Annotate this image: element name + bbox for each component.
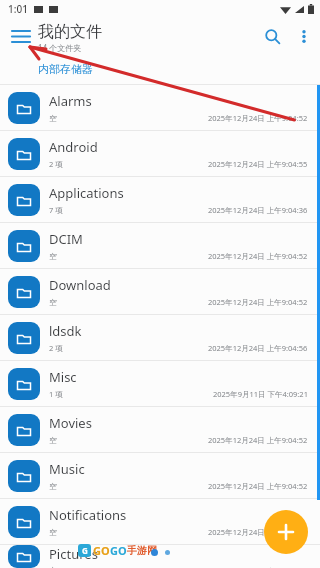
staticText: ldsdk <box>49 322 82 340</box>
staticText: 2025年9月11日 下午4:09:21 <box>213 389 308 399</box>
staticText: Alarms <box>49 92 92 110</box>
staticText: 空 <box>49 298 57 307</box>
button[interactable]: Movies <box>0 407 320 452</box>
staticText: 手游网 <box>127 544 157 557</box>
staticText: GO <box>93 543 110 558</box>
button[interactable]: Alarms <box>0 85 320 130</box>
button[interactable]: Music <box>0 453 320 498</box>
staticText: Music <box>49 460 85 478</box>
staticText: 空 <box>49 252 57 261</box>
staticText: 2025年12月24日 上午9:04:52 <box>208 251 308 261</box>
staticText: 1 项 <box>49 389 63 399</box>
button[interactable]: More options <box>288 20 320 52</box>
button[interactable]: 内部存储器 <box>38 62 93 76</box>
staticText: Download <box>49 276 111 294</box>
button[interactable]: Search <box>256 20 288 52</box>
staticText: 我的文件 <box>38 22 102 42</box>
staticText: 2025年12月24日 上午9:04:56 <box>208 343 308 353</box>
staticText: 空 <box>49 436 57 445</box>
button[interactable]: Misc <box>0 361 320 406</box>
button[interactable]: Download <box>0 269 320 314</box>
staticText: 2025年12月24日 上午9:04:52 <box>208 113 308 123</box>
staticText: 1:01 <box>8 2 28 16</box>
button[interactable]: DCIM <box>0 223 320 268</box>
staticText: 2 项 <box>49 343 63 353</box>
staticText: 2025年12月24日 上午9:04:52 <box>208 527 308 537</box>
staticText: DCIM <box>49 230 83 248</box>
staticText: G <box>82 545 88 556</box>
staticText: 14 个文件夹 <box>38 42 82 53</box>
staticText: 2025年12月24日 上午9:04:52 <box>208 297 308 307</box>
staticText: Movies <box>49 414 92 432</box>
staticText: 2025年12月24日 上午9:04:52 <box>208 435 308 445</box>
staticText: 2025年12月24日 上午9:04:36 <box>208 205 308 215</box>
staticText: 7 项 <box>49 205 63 215</box>
staticText: 空 <box>49 114 57 123</box>
staticText: 2025年12月24日 上午9:04:52 <box>208 481 308 491</box>
staticText: 空 <box>49 482 57 491</box>
button[interactable]: ldsdk <box>0 315 320 360</box>
button[interactable]: Add <box>264 510 308 554</box>
button[interactable]: Applications <box>0 177 320 222</box>
button[interactable]: Pictures <box>0 545 320 568</box>
button[interactable]: Notifications <box>0 499 320 544</box>
staticText: 空 <box>49 528 57 537</box>
staticText: Pictures <box>49 545 98 563</box>
button[interactable]: Menu <box>6 21 36 51</box>
staticText: Android <box>49 138 98 156</box>
staticText: Misc <box>49 368 77 386</box>
staticText: 2 项 <box>49 159 63 169</box>
button[interactable]: Android <box>0 131 320 176</box>
staticText: 空 <box>49 566 57 568</box>
staticText: 2025年12月24日 上午9:04:55 <box>208 159 308 169</box>
staticText: GO <box>110 543 127 558</box>
staticText: Notifications <box>49 506 127 524</box>
staticText: Applications <box>49 184 124 202</box>
